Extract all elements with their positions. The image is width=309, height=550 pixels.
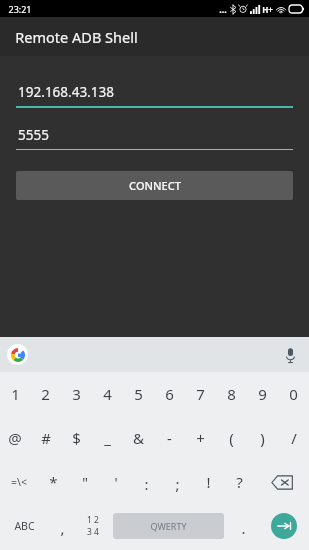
staticText: 8 <box>227 384 236 404</box>
button[interactable]: $ <box>61 416 92 460</box>
button[interactable]: 9 <box>247 372 278 416</box>
staticText: - <box>167 428 172 448</box>
button[interactable]: Voice input <box>279 344 301 366</box>
button[interactable]: ; <box>162 460 193 504</box>
staticText: 3 4 <box>87 526 99 538</box>
staticText: Remote ADB Shell <box>15 27 138 47</box>
staticText: 23:21 <box>8 3 32 15</box>
staticText: 192.168.43.138 <box>18 83 114 101</box>
staticText: 7 <box>196 384 205 404</box>
staticText: 0 <box>289 384 298 404</box>
staticText: ) <box>260 428 265 448</box>
button[interactable]: 8 <box>216 372 247 416</box>
button[interactable]: ? <box>224 460 255 504</box>
staticText: @ <box>8 428 22 448</box>
staticText: 5555 <box>18 126 49 144</box>
staticText: H+ <box>262 4 273 15</box>
staticText: _ <box>104 428 111 448</box>
staticText: : <box>144 474 149 494</box>
staticText: " <box>82 473 88 492</box>
button[interactable]: . <box>228 504 259 548</box>
staticText: ! <box>206 472 211 492</box>
button[interactable]: 5555 <box>16 126 293 150</box>
button[interactable]: ' <box>100 460 131 504</box>
button[interactable]: " <box>69 460 100 504</box>
staticText: =\< <box>11 475 27 489</box>
button[interactable]: # <box>30 416 61 460</box>
staticText: ( <box>229 428 234 448</box>
button[interactable]: Google <box>7 344 28 365</box>
button[interactable]: 0 <box>278 372 309 416</box>
staticText: * <box>49 472 58 492</box>
button[interactable]: @ <box>0 416 30 460</box>
button[interactable]: 3 <box>61 372 92 416</box>
staticText: 4 <box>103 384 112 404</box>
button[interactable]: Backspace <box>255 460 309 504</box>
button[interactable]: : <box>131 460 162 504</box>
staticText: CONNECT <box>129 178 181 193</box>
button[interactable]: & <box>123 416 154 460</box>
staticText: ... <box>219 3 227 15</box>
staticText: / <box>291 428 297 448</box>
button[interactable]: 7 <box>185 372 216 416</box>
staticText: 6 <box>165 384 174 404</box>
button[interactable]: 192.168.43.138 <box>16 83 293 108</box>
staticText: & <box>133 428 144 448</box>
staticText: 3 <box>72 384 81 404</box>
button[interactable]: , <box>48 504 76 548</box>
button[interactable]: _ <box>92 416 123 460</box>
button[interactable]: ABC <box>0 504 48 548</box>
button[interactable]: 1 <box>0 372 30 416</box>
button[interactable]: 6 <box>154 372 185 416</box>
button[interactable]: 4 <box>92 372 123 416</box>
button[interactable]: + <box>185 416 216 460</box>
button[interactable]: * <box>38 460 69 504</box>
button[interactable]: 2 <box>30 372 61 416</box>
staticText: QWERTY <box>150 520 187 532</box>
staticText: , <box>60 518 65 538</box>
staticText: . <box>241 518 246 538</box>
staticText: ; <box>175 474 180 494</box>
staticText: 5 <box>134 384 143 404</box>
button[interactable]: Numeric keypad <box>76 504 109 548</box>
staticText: ABC <box>14 519 35 533</box>
button[interactable]: 5 <box>123 372 154 416</box>
staticText: # <box>41 428 51 448</box>
staticText: + <box>196 428 205 448</box>
button[interactable]: ( <box>216 416 247 460</box>
staticText: 1 2 <box>87 514 99 526</box>
button[interactable]: Enter <box>271 513 297 539</box>
staticText: ? <box>236 472 243 492</box>
staticText: 1 <box>11 384 20 404</box>
button[interactable]: CONNECT <box>16 171 293 200</box>
button[interactable]: ! <box>193 460 224 504</box>
button[interactable]: ) <box>247 416 278 460</box>
button[interactable]: QWERTY <box>113 513 224 539</box>
button[interactable]: / <box>278 416 309 460</box>
staticText: 9 <box>258 384 267 404</box>
button[interactable]: =\< <box>0 460 38 504</box>
staticText: 2 <box>41 384 50 404</box>
staticText: ' <box>114 473 118 492</box>
button[interactable]: - <box>154 416 185 460</box>
staticText: $ <box>72 428 81 448</box>
